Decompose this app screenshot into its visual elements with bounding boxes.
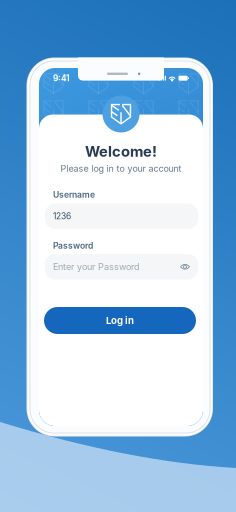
- button[interactable]: Log in: [44, 307, 196, 334]
- staticText: Please log in to your account: [60, 163, 181, 174]
- staticText: Password: [53, 240, 93, 251]
- staticText: Enter your Password: [53, 261, 140, 272]
- staticText: Username: [53, 189, 95, 200]
- staticText: Log in: [106, 315, 134, 326]
- staticText: Welcome!: [85, 143, 157, 160]
- staticText: 1236: [53, 211, 71, 221]
- staticText: 9:41: [53, 73, 70, 83]
